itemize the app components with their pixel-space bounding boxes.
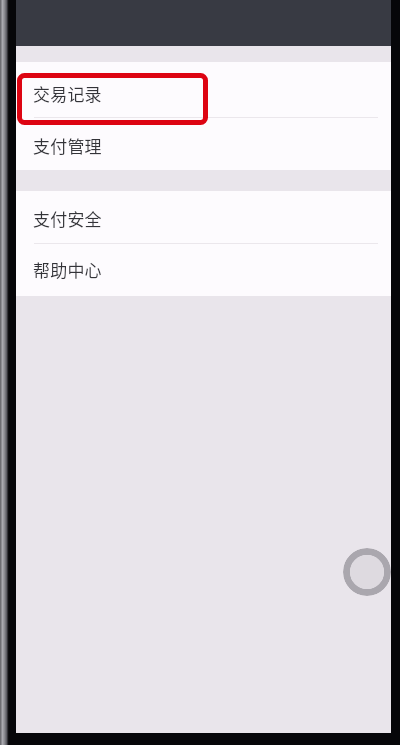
staticText: 帮助中心	[33, 257, 102, 282]
button[interactable]: 帮助中心	[16, 244, 391, 296]
button[interactable]: 支付管理	[16, 118, 391, 170]
button[interactable]: 支付安全	[16, 191, 391, 244]
staticText: 支付安全	[33, 206, 102, 231]
button[interactable]: 交易记录	[16, 62, 391, 118]
staticText: 支付管理	[33, 133, 102, 158]
button[interactable]: Assistive touch	[343, 548, 391, 596]
staticText: 交易记录	[33, 81, 102, 106]
